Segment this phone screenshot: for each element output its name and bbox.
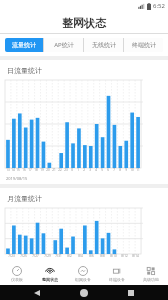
staticText: 13 <box>6 168 10 172</box>
button[interactable]: 高级功能 <box>134 263 168 285</box>
staticText: 21 <box>52 168 56 172</box>
staticText: 18 <box>34 168 38 172</box>
staticText: 1 <box>77 168 79 172</box>
staticText: AP统计 <box>54 41 74 49</box>
staticText: 整网状态 <box>62 16 106 30</box>
staticText: 8/14 <box>132 254 139 258</box>
staticText: 8/6 <box>89 254 94 258</box>
button[interactable]: Recents <box>121 285 141 300</box>
staticText: 高级功能 <box>143 277 159 282</box>
staticText: 6:52 <box>153 2 165 10</box>
staticText: 4 <box>95 168 97 172</box>
staticText: 0 <box>71 168 73 172</box>
staticText: 8/12 <box>121 254 128 258</box>
staticText: 2 <box>83 168 85 172</box>
staticText: 15 <box>16 168 20 172</box>
button[interactable]: Back <box>27 285 47 300</box>
staticText: 7/29 <box>44 254 51 258</box>
staticText: 终端统计 <box>132 41 156 49</box>
staticText: 7 <box>113 168 115 172</box>
staticText: 日流量统计 <box>7 66 42 75</box>
staticText: 6 <box>107 168 109 172</box>
staticText: 无线统计 <box>92 41 116 49</box>
staticText: 11 <box>136 168 140 172</box>
staticText: 8/2 <box>67 254 72 258</box>
staticText: 7/25 <box>20 254 27 258</box>
staticText: 7/31 <box>55 254 62 258</box>
staticText: 2019/08/15 <box>6 176 28 181</box>
button[interactable]: 整网状态 <box>33 263 66 285</box>
button[interactable]: Home <box>74 285 94 300</box>
staticText: 9 <box>125 168 127 172</box>
staticText: 终端设备 <box>109 277 125 282</box>
staticText: 22 <box>58 168 62 172</box>
staticText: 8/4 <box>78 254 83 258</box>
staticText: 8 <box>119 168 121 172</box>
staticText: 组网设备 <box>75 277 91 282</box>
staticText: 整网状态 <box>42 277 58 282</box>
staticText: 5 <box>101 168 103 172</box>
staticText: 仪表板 <box>11 277 23 282</box>
staticText: 17 <box>28 168 32 172</box>
button[interactable]: AP统计 <box>44 38 83 52</box>
staticText: 19 <box>40 168 44 172</box>
staticText: 14 <box>11 168 15 172</box>
staticText: 月流量统计 <box>7 194 42 203</box>
staticText: 7/23 <box>8 254 15 258</box>
staticText: 8/8 <box>100 254 105 258</box>
button[interactable]: 终端设备 <box>100 263 134 285</box>
button[interactable]: 无线统计 <box>84 38 123 52</box>
staticText: 3 <box>89 168 91 172</box>
staticText: 20 <box>46 168 50 172</box>
button[interactable]: 终端统计 <box>124 38 163 52</box>
staticText: 10 <box>130 168 134 172</box>
staticText: 流量统计 <box>12 41 36 49</box>
button[interactable]: 仪表板 <box>0 263 33 285</box>
button[interactable]: 流量统计 <box>5 38 43 52</box>
staticText: 16 <box>22 168 26 172</box>
staticText: 8/10 <box>110 254 117 258</box>
button[interactable]: 组网设备 <box>66 263 100 285</box>
staticText: 23 <box>64 168 68 172</box>
staticText: 7/27 <box>32 254 39 258</box>
